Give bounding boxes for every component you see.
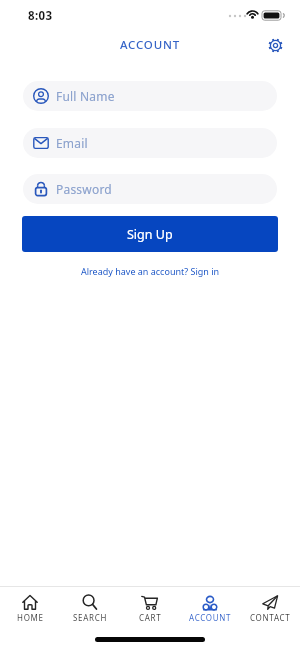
button[interactable]: SEARCH (60, 587, 120, 621)
staticText: Sign Up (127, 226, 173, 243)
staticText: Password (56, 181, 112, 197)
staticText: HOME (17, 612, 44, 621)
staticText: CONTACT (250, 612, 291, 621)
staticText: Full Name (56, 88, 115, 104)
staticText: ACCOUNT (120, 37, 180, 53)
staticText: SEARCH (73, 612, 108, 621)
button[interactable]: HOME (0, 587, 60, 621)
button[interactable]: CONTACT (240, 587, 300, 621)
button[interactable]: ACCOUNT (180, 587, 240, 621)
button[interactable] (267, 37, 284, 54)
staticText: 8:03 (28, 8, 53, 24)
staticText: Already have an account? Sign in (81, 265, 220, 277)
button[interactable]: Password (23, 174, 277, 204)
staticText: CART (139, 612, 162, 621)
button[interactable]: CART (120, 587, 180, 621)
staticText: Email (56, 135, 88, 151)
staticText: ACCOUNT (189, 612, 232, 621)
button[interactable]: Full Name (23, 81, 277, 111)
button[interactable]: Email (23, 128, 277, 158)
button[interactable]: Already have an account? Sign in (0, 265, 300, 277)
button[interactable]: Sign Up (22, 216, 278, 252)
